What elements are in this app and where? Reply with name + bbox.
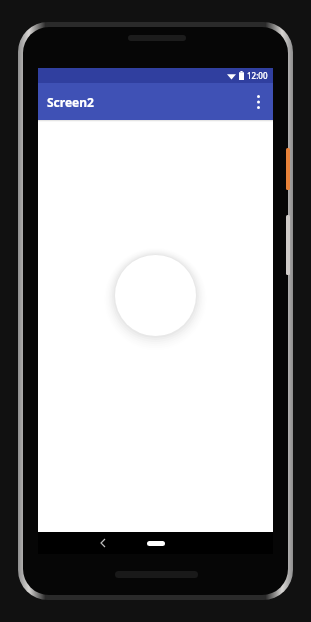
other: Power: [286, 148, 290, 190]
button[interactable]: Back: [93, 532, 113, 554]
button[interactable]: [115, 255, 196, 336]
staticText: Screen2: [47, 94, 94, 110]
button[interactable]: Home: [147, 541, 165, 546]
button[interactable]: More options: [243, 87, 273, 117]
other: Volume: [286, 215, 290, 275]
staticText: 12:00: [247, 70, 268, 81]
